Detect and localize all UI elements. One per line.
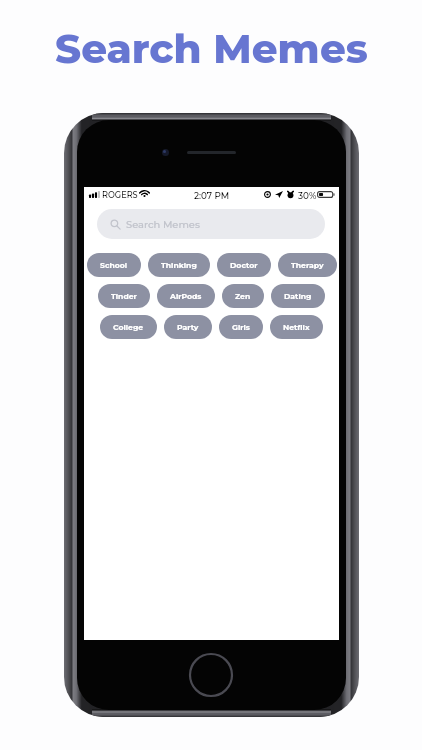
button[interactable]: Dating xyxy=(271,284,325,308)
button[interactable]: Zen xyxy=(222,284,264,308)
button[interactable]: Therapy xyxy=(278,253,337,277)
staticText: Girls xyxy=(232,323,250,332)
staticText: Dating xyxy=(284,292,312,301)
button[interactable]: Party xyxy=(164,315,212,339)
staticText: Therapy xyxy=(291,261,324,270)
staticText: 30% xyxy=(298,190,317,201)
staticText: Zen xyxy=(235,292,251,301)
button[interactable]: School xyxy=(87,253,141,277)
staticText: AirPods xyxy=(170,292,202,301)
button[interactable]: Tinder xyxy=(98,284,150,308)
staticText: 2:07 PM xyxy=(84,190,339,201)
button[interactable]: Thinking xyxy=(148,253,210,277)
staticText: ROGERS xyxy=(102,190,138,200)
staticText: Party xyxy=(177,323,199,332)
button[interactable]: AirPods xyxy=(157,284,215,308)
button[interactable]: Doctor xyxy=(217,253,271,277)
button[interactable]: Girls xyxy=(219,315,263,339)
button[interactable]: Netflix xyxy=(270,315,323,339)
staticText: Search Memes xyxy=(126,218,200,230)
staticText: School xyxy=(100,261,128,270)
staticText: College xyxy=(113,323,144,332)
button[interactable]: Search Memes xyxy=(97,209,325,239)
staticText: Search Memes xyxy=(55,24,368,73)
staticText: Netflix xyxy=(283,323,310,332)
staticText: Tinder xyxy=(111,292,137,301)
staticText: Doctor xyxy=(230,261,258,270)
staticText: Thinking xyxy=(161,261,197,270)
button[interactable]: College xyxy=(100,315,157,339)
